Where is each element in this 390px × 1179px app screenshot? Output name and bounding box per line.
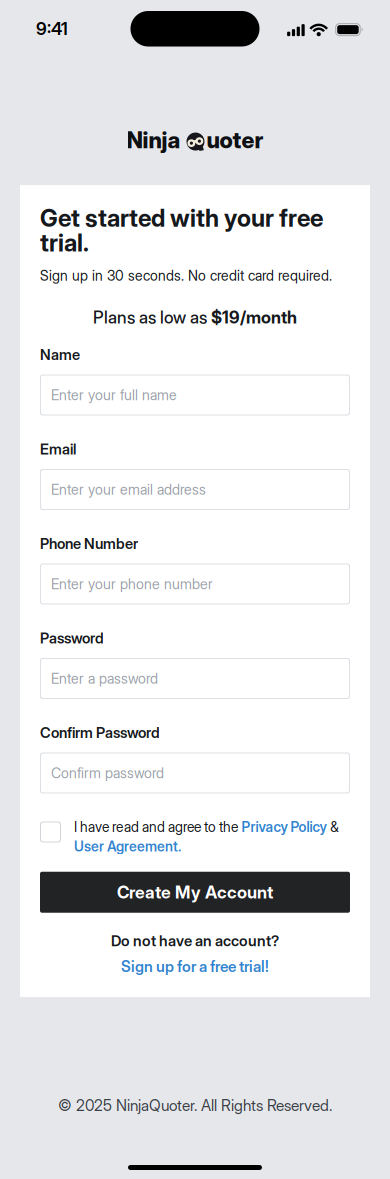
- staticText: Create My Account: [117, 882, 273, 903]
- staticText: Sign up in 30 seconds. No credit card re…: [40, 267, 332, 284]
- staticText: © 2025 NinjaQuoter. All Rights Reserved.: [58, 1096, 332, 1115]
- staticText: Ninja: [126, 126, 180, 154]
- staticText: Phone Number: [40, 535, 138, 552]
- button[interactable]: Name text field: [40, 374, 350, 415]
- button[interactable]: Confirm Password text field: [40, 752, 350, 793]
- staticText: Confirm password: [51, 764, 164, 781]
- staticText: &: [330, 818, 338, 835]
- staticText: uoter: [206, 126, 263, 154]
- button[interactable]: Create My Account: [40, 872, 350, 913]
- staticText: I have read and agree to the: [74, 818, 238, 835]
- button[interactable]: Sign up for a free trial!: [40, 957, 350, 976]
- staticText: 9:41: [36, 18, 68, 39]
- staticText: Enter your email address: [51, 481, 206, 498]
- button[interactable]: Password text field: [40, 658, 350, 699]
- staticText: User Agreement.: [74, 838, 181, 855]
- staticText: Privacy Policy: [242, 818, 327, 835]
- staticText: Sign up for a free trial!: [121, 957, 269, 976]
- staticText: Confirm Password: [40, 724, 160, 741]
- staticText: Plans as low as $19/month: [93, 307, 297, 327]
- button[interactable]: Phone Number text field: [40, 563, 350, 604]
- button[interactable]: Email text field: [40, 469, 350, 510]
- button[interactable]: Privacy Policy: [242, 818, 327, 835]
- button[interactable]: User Agreement.: [74, 838, 181, 855]
- staticText: Password: [40, 629, 104, 647]
- staticText: Do not have an account?: [111, 932, 279, 950]
- staticText: Enter a password: [51, 670, 158, 687]
- staticText: Enter your phone number: [51, 575, 213, 592]
- button[interactable]: Agree to the Privacy Policy and User Agr…: [40, 821, 61, 842]
- staticText: Enter your full name: [51, 386, 177, 404]
- staticText: Email: [40, 440, 76, 458]
- staticText: Name: [40, 346, 80, 363]
- staticText: Get started with your free trial.: [40, 204, 323, 257]
